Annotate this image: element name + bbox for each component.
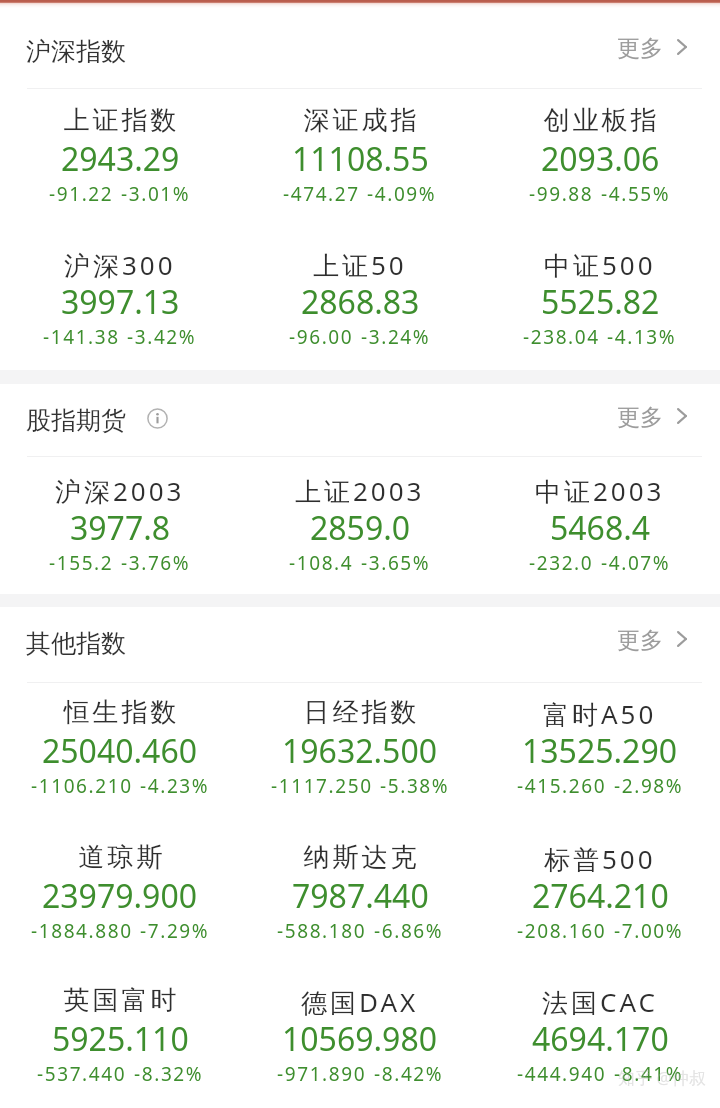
button[interactable]: 中证500: [480, 250, 720, 394]
staticText: 沪深指数: [26, 36, 126, 67]
staticText: 股指期货: [26, 405, 126, 436]
staticText: -6.86%: [374, 918, 444, 944]
button[interactable]: 日经指数: [240, 699, 480, 843]
button[interactable]: 沪深2003: [0, 476, 240, 620]
staticText: -108.4: [289, 550, 354, 576]
staticText: 富时A50: [543, 696, 657, 732]
staticText: 创业板指: [542, 104, 658, 137]
staticText: -1106.210: [31, 773, 133, 799]
staticText: -155.2: [49, 550, 114, 576]
staticText: 10569.980: [282, 1017, 438, 1061]
staticText: 法国CAC: [542, 984, 658, 1020]
staticText: -91.22: [49, 181, 114, 207]
staticText: -474.27: [283, 181, 360, 207]
staticText: 23979.900: [42, 874, 198, 918]
button[interactable]: 创业板指: [480, 107, 720, 251]
staticText: 德国DAX: [301, 984, 419, 1020]
staticText: 3997.13: [61, 280, 180, 324]
button[interactable]: 上证2003: [240, 476, 480, 620]
button[interactable]: 富时A50: [480, 699, 720, 843]
staticText: -2.98%: [614, 773, 684, 799]
staticText: 日经指数: [302, 696, 418, 729]
staticText: 恒生指数: [62, 696, 178, 729]
staticText: -4.23%: [140, 773, 210, 799]
staticText: 4694.170: [532, 1017, 669, 1061]
staticText: 沪深300: [64, 247, 176, 283]
staticText: 2859.0: [310, 506, 411, 550]
button[interactable]: 英国富时: [0, 987, 240, 1108]
button[interactable]: 中证2003: [480, 476, 720, 620]
button[interactable]: 更多: [617, 403, 720, 432]
staticText: 道琼斯: [77, 841, 164, 874]
staticText: 更多: [617, 34, 663, 63]
staticText: -99.88: [529, 181, 594, 207]
staticText: -8.32%: [134, 1061, 204, 1087]
staticText: -7.29%: [140, 918, 210, 944]
staticText: 上证50: [313, 247, 407, 283]
staticText: 3977.8: [70, 506, 171, 550]
staticText: -3.01%: [121, 181, 191, 207]
button[interactable]: 股指期货: [0, 395, 180, 446]
staticText: -4.13%: [607, 324, 677, 350]
staticText: -96.00: [289, 324, 354, 350]
staticText: -5.38%: [380, 773, 450, 799]
button[interactable]: 更多: [617, 626, 720, 655]
staticText: -238.04: [523, 324, 600, 350]
staticText: 19632.500: [282, 729, 438, 773]
button[interactable]: 纳斯达克: [240, 844, 480, 988]
staticText: 沪深2003: [55, 473, 185, 509]
staticText: 13525.290: [522, 729, 678, 773]
staticText: -3.76%: [121, 550, 191, 576]
staticText: -4.55%: [601, 181, 671, 207]
button[interactable]: 沪深指数: [0, 26, 138, 77]
button[interactable]: 上证50: [240, 250, 480, 394]
staticText: -3.24%: [361, 324, 431, 350]
staticText: -8.42%: [374, 1061, 444, 1087]
staticText: 7987.440: [292, 874, 429, 918]
staticText: 标普500: [544, 841, 656, 877]
button[interactable]: 恒生指数: [0, 699, 240, 843]
staticText: -588.180: [277, 918, 367, 944]
button[interactable]: 道琼斯: [0, 844, 240, 988]
button[interactable]: 更多: [617, 34, 720, 63]
button[interactable]: 沪深300: [0, 250, 240, 394]
staticText: -537.440: [37, 1061, 127, 1087]
staticText: 纳斯达克: [302, 841, 418, 874]
staticText: 2943.29: [61, 137, 180, 181]
staticText: -3.65%: [361, 550, 431, 576]
staticText: -208.160: [517, 918, 607, 944]
button[interactable]: 德国DAX: [240, 987, 480, 1108]
button[interactable]: 标普500: [480, 844, 720, 988]
staticText: -971.890: [277, 1061, 367, 1087]
staticText: 5525.82: [541, 280, 660, 324]
staticText: 5925.110: [52, 1017, 189, 1061]
button[interactable]: 法国CAC: [480, 987, 720, 1108]
staticText: 上证2003: [295, 473, 425, 509]
button[interactable]: 上证指数: [0, 107, 240, 251]
staticText: 中证2003: [535, 473, 665, 509]
staticText: -1884.880: [31, 918, 133, 944]
other: Information about index futures: [147, 408, 168, 429]
staticText: -4.07%: [601, 550, 671, 576]
staticText: 深证成指: [302, 104, 418, 137]
staticText: -141.38: [43, 324, 120, 350]
staticText: -8.41%: [614, 1061, 684, 1087]
staticText: 11108.55: [292, 137, 429, 181]
staticText: -3.42%: [127, 324, 197, 350]
staticText: 25040.460: [42, 729, 198, 773]
staticText: 知乎 @仲叔: [618, 1066, 706, 1089]
staticText: 中证500: [544, 247, 656, 283]
staticText: 2868.83: [301, 280, 420, 324]
button[interactable]: 深证成指: [240, 107, 480, 251]
button[interactable]: 其他指数: [0, 618, 138, 669]
staticText: 其他指数: [26, 628, 126, 659]
staticText: 5468.4: [550, 506, 651, 550]
staticText: -1117.250: [271, 773, 373, 799]
staticText: -444.940: [517, 1061, 607, 1087]
staticText: -4.09%: [367, 181, 437, 207]
staticText: -232.0: [529, 550, 594, 576]
staticText: 2764.210: [532, 874, 669, 918]
staticText: -415.260: [517, 773, 607, 799]
staticText: 英国富时: [62, 984, 178, 1017]
staticText: 更多: [617, 403, 663, 432]
